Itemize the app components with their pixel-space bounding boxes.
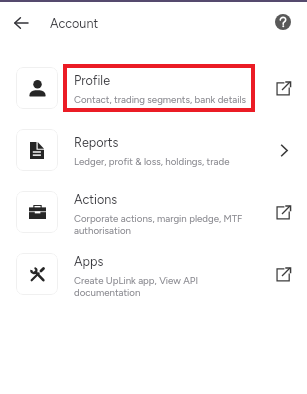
button[interactable]: Help xyxy=(272,11,293,32)
staticText: Create UpLink app, View API documentatio… xyxy=(74,275,252,296)
button[interactable] xyxy=(0,181,307,243)
button[interactable] xyxy=(0,243,307,305)
staticText: Corporate actions, margin pledge, MTF au… xyxy=(74,213,252,234)
staticText: Account xyxy=(50,16,99,31)
staticText: Reports xyxy=(74,135,119,150)
staticText: Profile xyxy=(74,73,111,88)
staticText: Actions xyxy=(74,192,118,207)
staticText: Contact, trading segments, bank details xyxy=(74,94,247,106)
button[interactable]: Back xyxy=(8,11,33,34)
staticText: Apps xyxy=(74,254,104,269)
staticText: Ledger, profit & loss, holdings, trade xyxy=(74,156,230,168)
button[interactable] xyxy=(0,57,307,119)
button[interactable] xyxy=(0,119,307,181)
